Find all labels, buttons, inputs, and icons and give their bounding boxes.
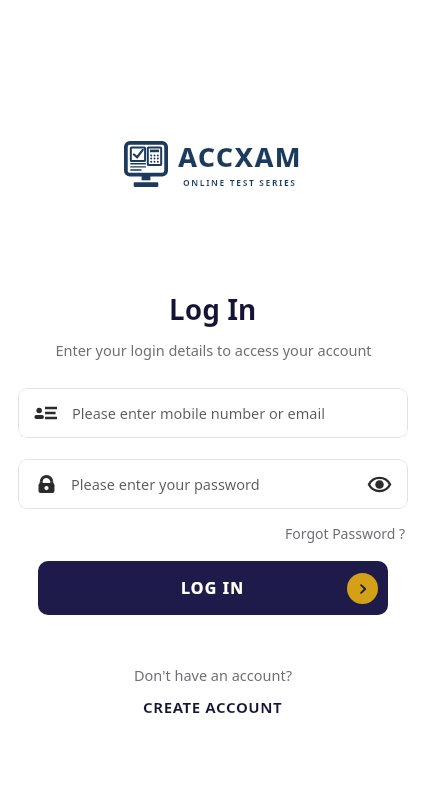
staticText: Don't have an account? xyxy=(134,665,292,685)
staticText: Please enter mobile number or email xyxy=(72,403,325,423)
button[interactable]: CREATE ACCOUNT xyxy=(137,694,289,720)
staticText: Log In xyxy=(169,290,257,328)
button[interactable]: Please enter your password xyxy=(18,459,408,509)
button[interactable]: LOG IN xyxy=(38,561,388,615)
button[interactable]: Please enter mobile number or email xyxy=(18,388,408,438)
staticText: ONLINE TEST SERIES xyxy=(183,177,297,189)
staticText: Please enter your password xyxy=(71,474,364,494)
staticText: Forgot Password ? xyxy=(285,524,406,543)
staticText: LOG IN xyxy=(181,577,245,599)
button[interactable]: Forgot Password ? xyxy=(283,521,408,546)
staticText: CREATE ACCOUNT xyxy=(143,697,283,717)
staticText: Enter your login details to access your … xyxy=(55,340,372,360)
button[interactable]: Show password xyxy=(364,469,394,499)
staticText: ACCXAM xyxy=(178,138,302,175)
